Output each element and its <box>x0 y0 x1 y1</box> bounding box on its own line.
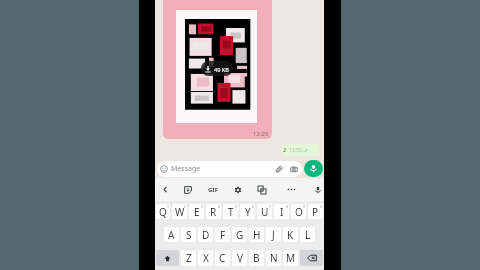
staticText: O <box>295 205 303 219</box>
button[interactable]: F <box>215 227 230 242</box>
button[interactable]: Back <box>155 178 176 201</box>
staticText: N <box>270 251 278 265</box>
staticText: L <box>305 228 311 242</box>
button[interactable]: Stickers <box>177 178 198 201</box>
button[interactable]: S <box>181 227 196 242</box>
button[interactable]: H <box>249 227 264 242</box>
button[interactable]: R <box>206 204 221 219</box>
staticText: 3 <box>201 204 204 209</box>
staticText: R <box>210 205 217 219</box>
button[interactable]: T <box>223 204 238 219</box>
staticText: Message <box>171 164 201 174</box>
staticText: Q <box>159 205 167 219</box>
button[interactable]: 2 <box>281 144 319 156</box>
staticText: X <box>203 251 209 265</box>
button[interactable]: Emoji <box>157 161 302 177</box>
button[interactable]: GIF <box>202 178 223 201</box>
staticText: B <box>253 251 260 265</box>
staticText: P <box>312 205 319 219</box>
button[interactable]: Voice message <box>304 160 323 177</box>
staticText: 6 <box>252 204 255 209</box>
button[interactable]: More options <box>281 178 302 201</box>
button[interactable]: W <box>172 204 187 219</box>
button[interactable]: Voice input <box>307 178 324 201</box>
staticText: 12:30 <box>289 147 302 154</box>
staticText: U <box>261 205 269 219</box>
staticText: GIF <box>208 186 218 194</box>
staticText: 8 <box>286 204 289 209</box>
button[interactable]: Shift <box>156 250 179 266</box>
button[interactable]: Y <box>240 204 255 219</box>
button[interactable]: L <box>300 227 315 242</box>
staticText: D <box>202 228 210 242</box>
button[interactable]: Download 49 KB <box>163 0 272 139</box>
staticText: 12:29 <box>253 130 269 138</box>
staticText: E <box>194 205 200 219</box>
button[interactable]: A <box>164 227 179 242</box>
staticText: 2 <box>184 204 187 209</box>
button[interactable]: P <box>308 204 323 219</box>
button[interactable]: V <box>232 250 247 266</box>
button[interactable]: Camera <box>290 165 298 173</box>
button[interactable]: M <box>283 250 298 266</box>
staticText: 7 <box>269 204 272 209</box>
button[interactable]: C <box>215 250 230 266</box>
button[interactable]: U <box>257 204 272 219</box>
staticText: 0 <box>320 204 323 209</box>
button[interactable]: J <box>266 227 281 242</box>
button[interactable]: Attach <box>275 165 284 174</box>
staticText: V <box>237 251 243 265</box>
button[interactable]: Download 49 KB <box>201 61 233 76</box>
button[interactable]: I <box>274 204 289 219</box>
staticText: G <box>236 228 244 242</box>
button[interactable]: Z <box>181 250 196 266</box>
staticText: 9 <box>303 204 306 209</box>
staticText: H <box>253 228 261 242</box>
button[interactable]: O <box>291 204 306 219</box>
button[interactable]: Settings <box>227 178 248 201</box>
staticText: A <box>168 228 175 242</box>
staticText: 49 KB <box>214 66 229 73</box>
staticText: Y <box>245 205 251 219</box>
staticText: 4 <box>218 204 221 209</box>
other: Emoji <box>160 165 168 173</box>
button[interactable]: G <box>232 227 247 242</box>
button[interactable]: E <box>189 204 204 219</box>
button[interactable]: N <box>266 250 281 266</box>
staticText: F <box>220 228 226 242</box>
staticText: S <box>186 228 192 242</box>
staticText: J <box>272 228 275 242</box>
button[interactable]: Q <box>156 204 170 219</box>
staticText: 5 <box>235 204 238 209</box>
staticText: Z <box>186 251 192 265</box>
staticText: C <box>219 251 226 265</box>
staticText: 2 <box>283 146 287 154</box>
staticText: I <box>280 205 284 219</box>
staticText: 1 <box>167 204 170 209</box>
staticText: W <box>175 205 185 219</box>
button[interactable]: X <box>198 250 213 266</box>
button[interactable]: Backspace <box>300 250 323 266</box>
staticText: T <box>228 205 234 219</box>
staticText: M <box>286 251 296 265</box>
button[interactable]: K <box>283 227 298 242</box>
staticText: K <box>287 228 294 242</box>
button[interactable]: D <box>198 227 213 242</box>
button[interactable]: Translate <box>251 178 272 201</box>
button[interactable]: B <box>249 250 264 266</box>
